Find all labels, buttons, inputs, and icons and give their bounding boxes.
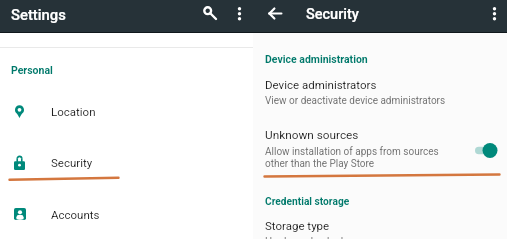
staticText: Personal (11, 64, 53, 76)
staticText: Accounts (51, 208, 100, 221)
staticText: Storage type (265, 219, 330, 232)
staticText: Security (306, 6, 359, 23)
button[interactable]: More options (481, 3, 507, 29)
staticText: View or deactivate device administrators (265, 95, 446, 107)
button[interactable]: Search (196, 3, 222, 29)
button[interactable]: Unknown sources toggle (474, 143, 498, 158)
button[interactable]: Device administrators (253, 75, 507, 106)
button[interactable]: Location (0, 100, 253, 122)
staticText: Security (51, 156, 93, 169)
staticText: Credential storage (265, 196, 350, 208)
staticText: Unknown sources (265, 128, 359, 142)
button[interactable]: Storage type (253, 216, 507, 239)
button[interactable]: Back (261, 3, 287, 29)
staticText: Hardware-backed (265, 236, 344, 239)
staticText: Device administrators (265, 78, 377, 91)
staticText: Allow installation of apps from sources … (265, 146, 439, 169)
button[interactable]: Accounts (0, 203, 253, 225)
button[interactable]: Security (0, 151, 253, 173)
button[interactable]: More options (227, 3, 253, 29)
staticText: Device administration (265, 53, 368, 65)
button[interactable]: Unknown sources (253, 125, 507, 168)
staticText: Location (51, 105, 96, 118)
staticText: Settings (11, 6, 66, 23)
